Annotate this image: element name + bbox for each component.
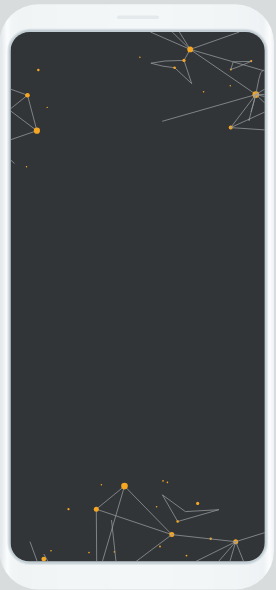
button[interactable] <box>0 0 276 590</box>
